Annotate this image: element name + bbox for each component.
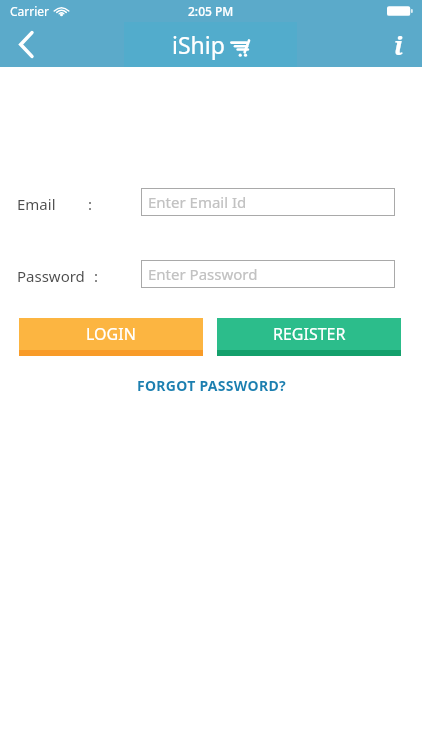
button[interactable]: FORGOT PASSWORD? — [129, 372, 294, 399]
staticText: i — [394, 28, 403, 62]
button[interactable]: LOGIN — [19, 318, 203, 356]
button[interactable]: Back — [0, 22, 52, 67]
staticText: 2:05 PM — [188, 3, 234, 19]
staticText: : — [88, 194, 93, 214]
staticText: Enter Password — [148, 264, 258, 284]
staticText: FORGOT PASSWORD? — [137, 376, 286, 395]
button[interactable]: Enter Email Id — [141, 188, 395, 216]
button[interactable]: Enter Password — [141, 260, 395, 288]
button[interactable]: Info — [374, 22, 422, 67]
button[interactable]: REGISTER — [217, 318, 401, 356]
staticText: Password — [17, 266, 85, 286]
staticText: Email — [17, 194, 56, 214]
staticText: : — [94, 266, 99, 286]
staticText: Enter Email Id — [148, 192, 247, 212]
staticText: LOGIN — [86, 323, 136, 345]
staticText: REGISTER — [273, 323, 346, 345]
staticText: Carrier — [10, 3, 50, 19]
staticText: iShip — [172, 29, 225, 60]
